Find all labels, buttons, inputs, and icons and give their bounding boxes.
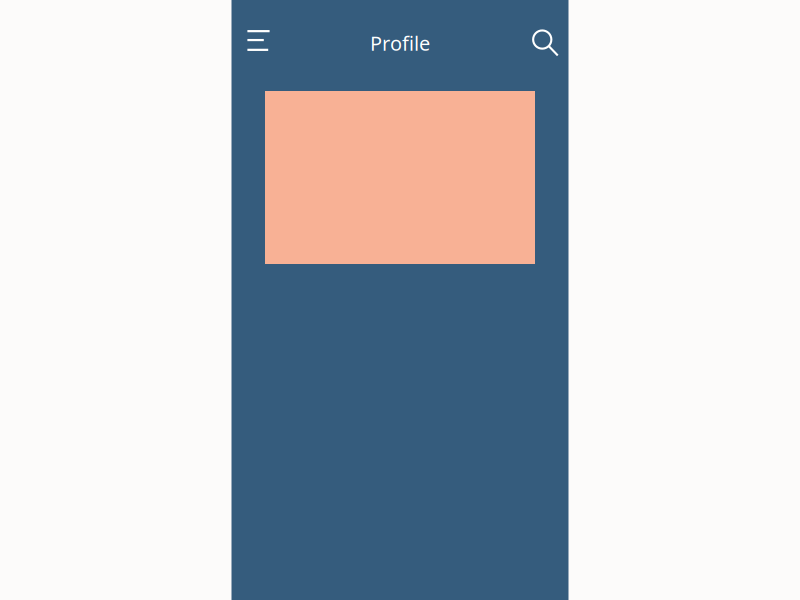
button[interactable]: Search	[521, 18, 565, 62]
button[interactable]: Menu	[236, 18, 280, 62]
staticText: Profile	[370, 30, 430, 56]
